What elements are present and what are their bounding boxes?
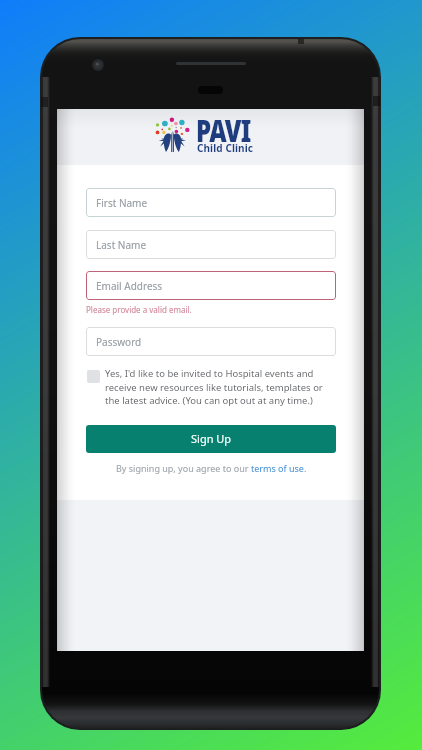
- button[interactable]: Email Address: [86, 271, 336, 300]
- staticText: By signing up, you agree to our: [116, 462, 251, 474]
- staticText: Child Clinic: [197, 141, 254, 155]
- button[interactable]: Password: [86, 327, 336, 356]
- staticText: PAVI: [196, 110, 251, 151]
- staticText: Password: [96, 335, 142, 349]
- staticText: Sign Up: [191, 431, 232, 446]
- staticText: Yes, I'd like to be invited to Hospital …: [105, 367, 336, 406]
- button[interactable]: First Name: [86, 188, 336, 217]
- button[interactable]: Opt in to emails: [87, 370, 100, 383]
- staticText: First Name: [96, 196, 148, 210]
- staticText: Last Name: [96, 238, 147, 252]
- staticText: .: [304, 462, 307, 474]
- staticText: Email Address: [96, 279, 163, 293]
- button[interactable]: terms of use: [251, 462, 304, 474]
- button[interactable]: Sign Up: [86, 425, 336, 453]
- button[interactable]: Last Name: [86, 230, 336, 259]
- staticText: Please provide a valid email.: [86, 304, 192, 315]
